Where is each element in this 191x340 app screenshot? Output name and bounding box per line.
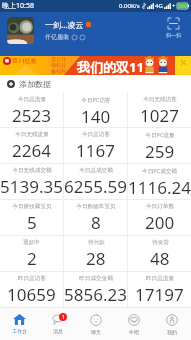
staticText: 今日PC访客 [81,96,111,104]
staticText: 1167 [76,139,115,162]
button[interactable]: 聊天 [77,308,115,340]
staticText: + [172,2,176,10]
button[interactable]: 工作台 [0,308,39,340]
staticText: 工作台 [12,328,27,334]
staticText: 我的 [167,329,177,335]
button[interactable]: 今日无线流量 [0,128,63,163]
button[interactable]: 今日总流量 [0,93,63,127]
staticText: 28 [86,247,106,270]
staticText: 2264 [12,139,51,162]
staticText: 1116.24 [128,176,191,199]
button[interactable]: 今日无线成交额 [0,164,63,199]
button[interactable]: 添加数据 [0,75,191,93]
button[interactable]: 头像 [7,17,34,44]
staticText: 140 [81,105,111,127]
button[interactable]: 我的 [153,308,191,340]
staticText: 晚上10:58 [2,1,34,11]
button[interactable]: 今日被收藏宝贝 [0,200,63,235]
button[interactable]: 关闭 [179,58,187,66]
staticText: 待发货 [152,239,169,246]
button[interactable]: 扫一扫 [163,15,183,38]
button[interactable]: 今日总访客 [64,128,127,163]
staticText: 5 [27,211,37,234]
staticText: 8 [91,211,101,234]
staticText: 今日无线流量 [15,131,49,138]
staticText: 4G [155,2,163,10]
button[interactable]: 待付款 [64,236,127,271]
button[interactable]: 1 [39,308,77,340]
button[interactable]: 今日总成交额 [64,164,127,199]
staticText: 今日购物车宝贝 [76,203,116,210]
staticText: 今日被收藏宝贝 [12,203,52,210]
button[interactable]: 昨日成交金额 [64,272,127,307]
button[interactable]: 今日订单数 [128,200,191,235]
staticText: 我们的双11 [77,58,144,76]
staticText: 消息 [53,328,63,334]
staticText: 聊天 [91,329,101,335]
button[interactable]: 双11狂欢 [0,56,191,75]
button[interactable]: 牛吧 [115,308,153,340]
button[interactable]: 今日无线访客 [128,93,191,127]
staticText: 待付款 [88,239,105,246]
staticText: 选公仔 [51,56,66,62]
staticText: 48 [150,247,170,270]
staticText: 今日总流量 [18,96,46,103]
staticText: 昨日总访客 [18,275,46,282]
staticText: 昨日成交金额 [79,275,113,282]
staticText: 6255.59 [64,175,127,198]
button[interactable]: 今日购物车宝贝 [64,200,127,235]
staticText: 牛吧 [129,329,139,335]
button[interactable]: 待发货 [128,236,191,271]
staticText: 扫一扫 [166,32,181,38]
staticText: 仟亿服装 [45,33,69,41]
staticText: 10659 [7,283,56,306]
staticText: 昨日总流量 [146,275,174,282]
staticText: 今日PC成交额 [142,167,177,175]
staticText: 领积分 [51,62,66,68]
button[interactable]: 昨日总访客 [0,272,63,307]
button[interactable]: 昨日总流量 [128,272,191,307]
button[interactable]: 退款中 [0,236,63,271]
button[interactable]: 今日PC成交额 [128,164,191,199]
staticText: 259 [145,140,175,163]
staticText: 今日无线访客 [143,96,177,103]
staticText: 双11狂欢 [12,57,37,65]
staticText: 今日总访客 [82,131,110,138]
staticText: 2 [27,247,37,270]
staticText: 添加数据 [19,79,51,89]
staticText: 5139.35 [0,175,63,198]
staticText: 2523 [12,104,51,127]
staticText: 赢福利 [51,68,66,74]
staticText: 一剑...凌云 [45,19,84,30]
staticText: 今日PC流量 [145,131,175,139]
button[interactable]: 今日PC流量 [128,128,191,163]
staticText: 今日订单数 [146,203,174,210]
staticText: 退款中 [23,239,40,246]
staticText: 今日无线成交额 [12,167,52,174]
staticText: 200 [145,211,175,234]
staticText: 0.00K/s [119,2,140,10]
staticText: 17197 [135,283,184,306]
staticText: 今日总成交额 [79,167,113,174]
staticText: 1 [62,314,65,321]
button[interactable]: 今日PC访客 [64,93,127,127]
staticText: 5856.23 [64,283,127,306]
staticText: 1027 [140,104,179,127]
